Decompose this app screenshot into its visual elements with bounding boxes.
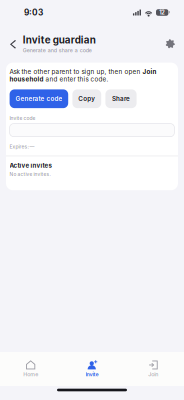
staticText: Ask the other parent to sign up, then op… <box>10 68 157 83</box>
button[interactable]: Copy <box>72 89 101 108</box>
staticText: No active invites. <box>10 171 51 177</box>
button[interactable]: Home <box>0 353 61 385</box>
button[interactable]: Settings <box>161 35 179 52</box>
button[interactable]: Back <box>0 36 23 52</box>
staticText: Generate and share a code <box>23 47 92 54</box>
staticText: Copy <box>78 95 95 103</box>
button[interactable]: Generate code <box>10 89 68 108</box>
staticText: Generate code <box>15 95 62 103</box>
staticText: Share <box>112 95 130 103</box>
button[interactable]: Invite <box>61 353 123 385</box>
staticText: Join <box>148 371 158 378</box>
staticText: Active invites <box>10 162 52 169</box>
button[interactable]: Share <box>105 89 137 108</box>
staticText: Invite code <box>10 115 36 121</box>
staticText: Home <box>23 371 38 378</box>
staticText: 9:03 <box>24 7 43 17</box>
staticText: 12 <box>159 9 165 16</box>
staticText: Expires: — <box>10 144 35 150</box>
staticText: Invite <box>85 371 98 378</box>
button[interactable]: Join <box>123 353 184 385</box>
staticText: Invite guardian <box>23 34 96 46</box>
